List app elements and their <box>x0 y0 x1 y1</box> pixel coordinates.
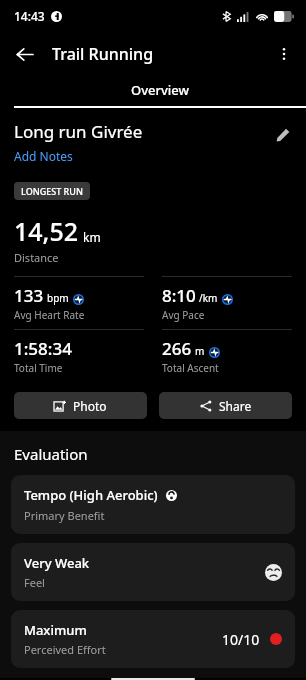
staticText: Avg Heart Rate <box>14 308 85 322</box>
button[interactable]: Info <box>164 488 178 502</box>
button[interactable]: Photo <box>14 392 147 419</box>
staticText: m <box>195 344 205 358</box>
staticText: Long run Givrée <box>14 120 143 143</box>
staticText: Very Weak <box>24 554 90 572</box>
staticText: 10/10 <box>222 630 260 649</box>
button[interactable]: Overview <box>14 76 306 108</box>
staticText: 266 <box>162 337 192 360</box>
staticText: 8:10 <box>162 284 196 307</box>
staticText: 133 <box>14 284 44 307</box>
button[interactable]: Share <box>159 392 292 419</box>
staticText: 14:43 <box>14 8 45 24</box>
staticText: bpm <box>47 291 69 305</box>
staticText: Tempo (High Aerobic) <box>24 486 158 504</box>
staticText: Evaluation <box>14 444 88 464</box>
staticText: Overview <box>131 81 190 99</box>
button[interactable]: Tempo (High Aerobic) <box>11 475 295 534</box>
staticText: Maximum <box>24 621 87 639</box>
staticText: /km <box>199 291 218 305</box>
staticText: LONGEST RUN <box>21 185 83 197</box>
button[interactable]: More options <box>266 36 302 72</box>
staticText: Total Time <box>14 361 63 375</box>
staticText: Distance <box>14 250 59 265</box>
staticText: Trail Running <box>52 43 154 65</box>
staticText: Photo <box>73 398 107 414</box>
staticText: Feel <box>24 575 45 590</box>
button[interactable]: Maximum <box>11 610 295 668</box>
staticText: 1:58:34 <box>14 337 72 360</box>
staticText: 14,52 <box>14 214 79 248</box>
button[interactable]: Add Notes <box>14 148 73 164</box>
staticText: Perceived Effort <box>24 642 106 657</box>
button[interactable]: Very Weak <box>11 543 295 601</box>
button[interactable]: Back <box>6 36 42 72</box>
staticText: Share <box>219 398 252 414</box>
staticText: Total Ascent <box>162 361 219 375</box>
button[interactable]: Edit <box>268 120 298 150</box>
staticText: Avg Pace <box>162 308 205 322</box>
staticText: Primary Benefit <box>24 508 105 523</box>
staticText: km <box>83 229 101 245</box>
